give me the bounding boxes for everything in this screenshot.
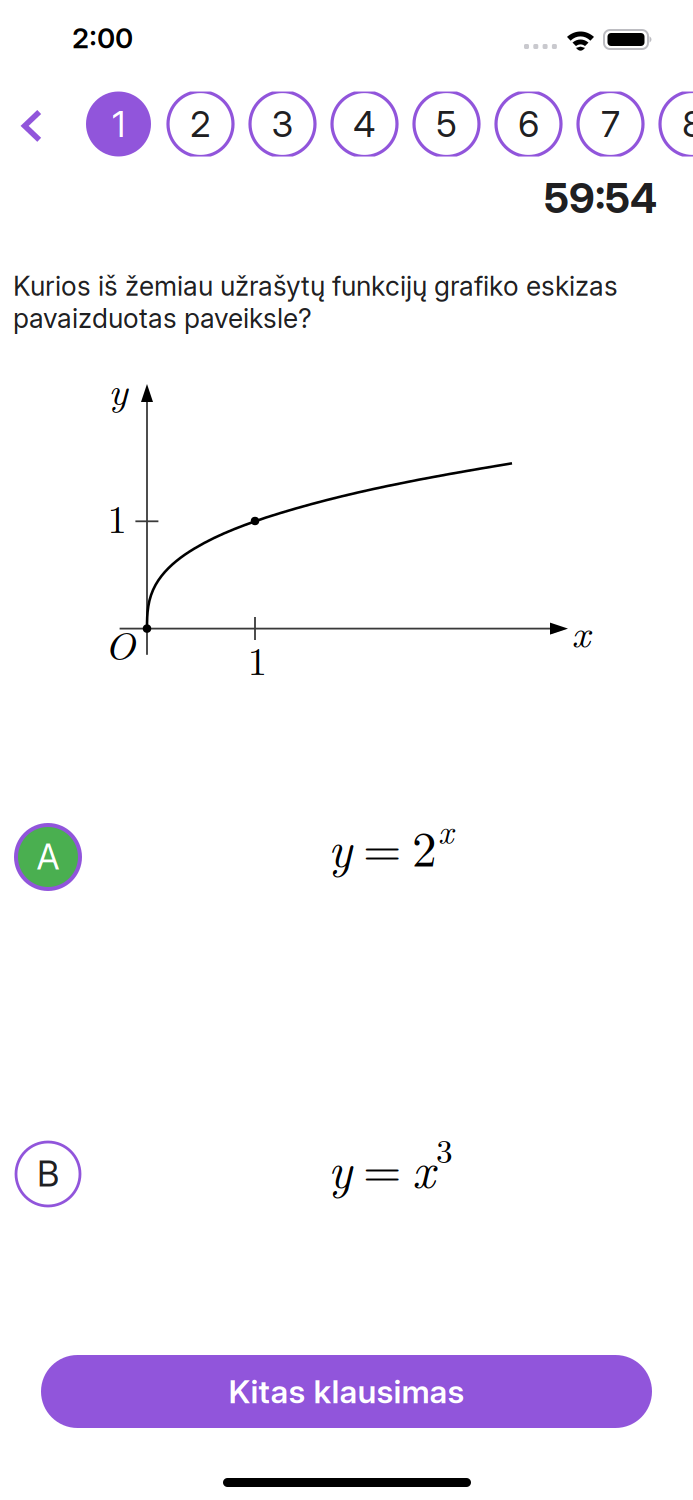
staticText: y: [328, 811, 352, 881]
staticText: =: [363, 811, 401, 881]
staticText: 3: [271, 102, 293, 146]
staticText: 7: [601, 102, 620, 146]
staticText: 2:00: [72, 21, 133, 55]
staticText: x: [438, 806, 453, 854]
button[interactable]: Kitas klausimas: [41, 1355, 652, 1428]
button[interactable]: 3: [250, 91, 315, 156]
button[interactable]: A: [0, 815, 693, 899]
staticText: B: [37, 1153, 59, 1195]
staticText: 6: [518, 102, 539, 146]
staticText: 1: [112, 102, 125, 146]
button[interactable]: 6: [496, 91, 561, 156]
button[interactable]: 5: [414, 91, 479, 156]
staticText: =: [363, 1132, 401, 1202]
button[interactable]: 8: [660, 91, 693, 156]
staticText: Kitas klausimas: [228, 1372, 464, 1411]
staticText: O: [104, 615, 135, 672]
staticText: 3: [436, 1125, 453, 1172]
staticText: 2: [412, 811, 437, 881]
button[interactable]: 4: [332, 91, 397, 156]
staticText: 59:54: [544, 173, 657, 223]
staticText: x: [412, 1132, 435, 1202]
staticText: Kurios iš žemiau užrašytų funkcijų grafi…: [13, 270, 618, 334]
button[interactable]: 7: [578, 91, 643, 156]
staticText: 2: [190, 102, 211, 146]
staticText: y: [328, 1132, 352, 1202]
staticText: 1: [107, 489, 126, 544]
button[interactable]: Back: [2, 91, 62, 161]
staticText: y: [108, 360, 127, 417]
staticText: 5: [436, 102, 457, 146]
staticText: 4: [353, 102, 376, 146]
staticText: x: [571, 602, 590, 659]
staticText: A: [36, 836, 59, 878]
staticText: 1: [248, 631, 267, 686]
button[interactable]: B: [0, 1132, 693, 1216]
button[interactable]: 1: [86, 91, 151, 156]
button[interactable]: 2: [168, 91, 233, 156]
staticText: 8: [682, 102, 693, 146]
